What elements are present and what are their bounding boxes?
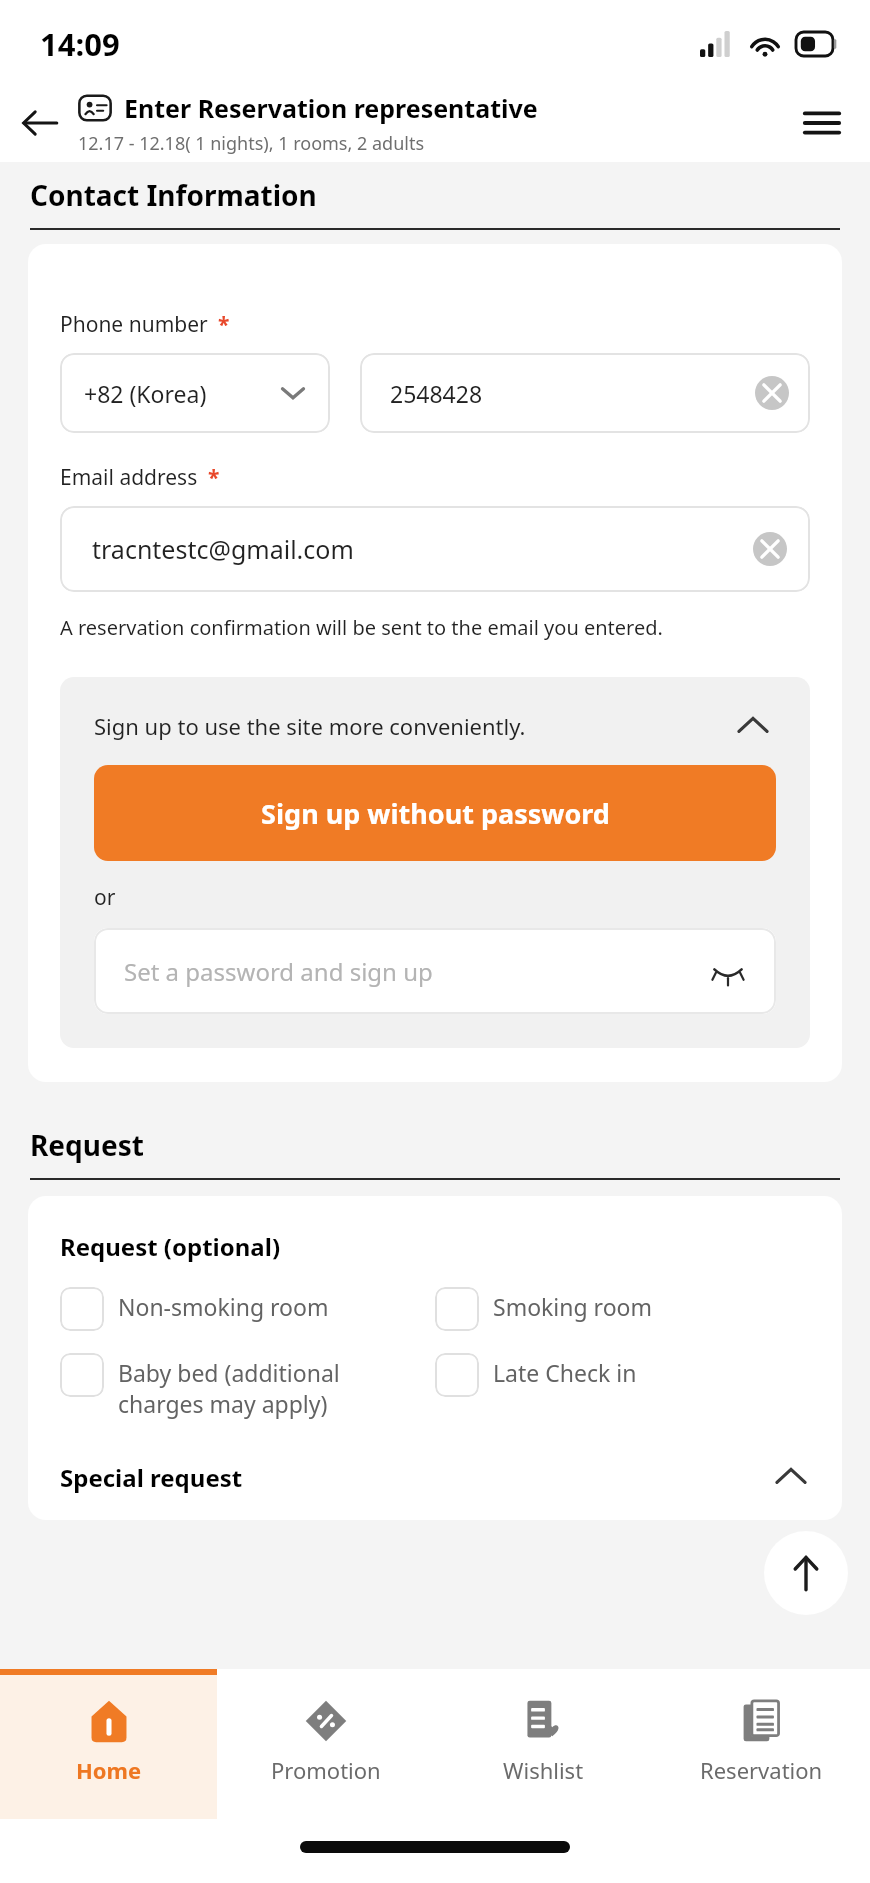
staticText: Smoking room (493, 1291, 652, 1322)
button[interactable]: 2548428 (360, 353, 810, 433)
button[interactable]: Smoking room (435, 1281, 810, 1335)
staticText: Home (76, 1755, 142, 1785)
staticText: Email address (60, 463, 198, 492)
button[interactable]: Sign up without password (94, 765, 776, 861)
button[interactable]: Promotion (217, 1669, 434, 1819)
button[interactable]: Wishlist (434, 1669, 652, 1819)
staticText: A reservation confirmation will be sent … (60, 614, 663, 641)
button[interactable]: Set a password and sign up (94, 928, 776, 1014)
staticText: Enter Reservation representative (124, 91, 538, 125)
staticText: Non-smoking room (118, 1291, 329, 1322)
staticText: 14:09 (40, 23, 120, 65)
staticText: Request (30, 1126, 144, 1164)
staticText: Phone number (60, 310, 208, 339)
staticText: Wishlist (503, 1755, 584, 1785)
staticText: * (218, 310, 230, 339)
button[interactable]: Sign up to use the site more convenientl… (94, 707, 776, 745)
staticText: Contact Information (30, 176, 317, 214)
staticText: Set a password and sign up (124, 955, 433, 988)
staticText: Sign up without password (261, 795, 610, 832)
staticText: Special request (60, 1461, 772, 1494)
button[interactable]: Menu (790, 91, 854, 155)
staticText: +82 (Korea) (84, 378, 207, 409)
button[interactable]: Back (10, 93, 70, 153)
staticText: 2548428 (390, 378, 483, 409)
staticText: or (94, 883, 116, 912)
button[interactable]: Scroll to top (764, 1531, 848, 1615)
staticText: Promotion (271, 1755, 381, 1785)
button[interactable]: Special request (60, 1458, 810, 1496)
button[interactable]: Baby bed (additional charges may apply) (60, 1347, 435, 1424)
staticText: Sign up to use the site more convenientl… (94, 711, 734, 741)
button[interactable]: tracntestc@gmail.com (60, 506, 810, 592)
button[interactable]: Clear phone number (754, 375, 790, 411)
staticText: Baby bed (additional charges may apply) (118, 1357, 340, 1420)
button[interactable]: Late Check in (435, 1347, 810, 1401)
staticText: 12.17 - 12.18( 1 nights), 1 rooms, 2 adu… (78, 131, 425, 156)
button[interactable]: +82 (Korea) (60, 353, 330, 433)
staticText: Late Check in (493, 1357, 637, 1388)
button[interactable]: Non-smoking room (60, 1281, 435, 1335)
staticText: * (208, 463, 220, 492)
staticText: Request (optional) (60, 1230, 281, 1263)
staticText: tracntestc@gmail.com (92, 532, 354, 566)
button[interactable]: Show password (706, 949, 750, 993)
staticText: Reservation (700, 1755, 823, 1785)
button[interactable]: Clear email address (752, 531, 788, 567)
button[interactable]: Home (0, 1669, 217, 1819)
button[interactable]: Reservation (652, 1669, 870, 1819)
